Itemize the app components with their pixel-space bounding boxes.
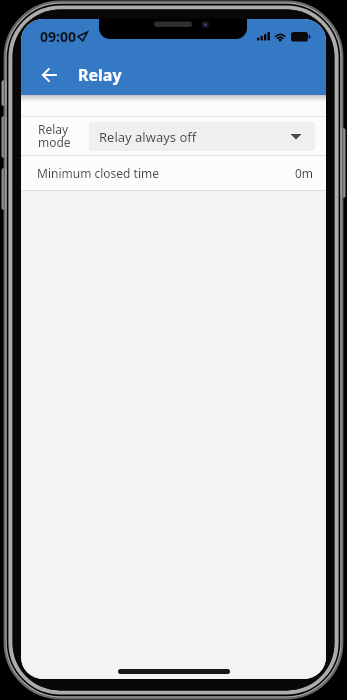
button[interactable] (34, 60, 64, 90)
button[interactable]: Relay mode (21, 117, 326, 155)
button[interactable]: Minimum closed time (21, 156, 326, 190)
staticText: Minimum closed time (37, 165, 160, 181)
staticText: Relay mode (38, 121, 71, 150)
staticText: 09:00 (40, 27, 76, 46)
staticText: 0m (295, 165, 314, 181)
staticText: Relay (78, 64, 122, 86)
button[interactable]: Relay always off (89, 122, 315, 151)
staticText: Relay always off (99, 128, 197, 146)
